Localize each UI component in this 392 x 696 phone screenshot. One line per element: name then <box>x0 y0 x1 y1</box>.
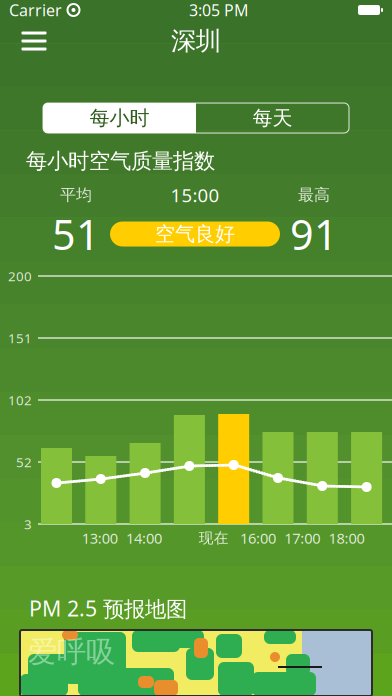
button[interactable]: 每小时 <box>43 103 196 133</box>
button[interactable]: Menu <box>11 21 57 61</box>
staticText: 3 <box>24 515 32 533</box>
staticText: 18:00 <box>329 528 365 548</box>
staticText: 爱呼吸 <box>28 634 115 670</box>
staticText: 17:00 <box>284 528 320 548</box>
staticText: PM 2.5 预报地图 <box>29 594 187 622</box>
staticText: 深圳 <box>171 25 221 56</box>
button[interactable]: 每天 <box>196 103 349 133</box>
staticText: 每天 <box>252 106 292 130</box>
staticText: 151 <box>8 329 32 347</box>
staticText: 3:05 PM <box>189 0 249 21</box>
staticText: 13:00 <box>82 528 118 548</box>
staticText: 每小时 <box>89 106 149 130</box>
staticText: 102 <box>8 391 32 409</box>
staticText: 15:00 <box>170 183 219 207</box>
staticText: 52 <box>16 453 32 471</box>
staticText: 平均 <box>60 185 92 205</box>
staticText: 14:00 <box>126 528 162 548</box>
staticText: 200 <box>8 267 32 285</box>
staticText: 现在 <box>199 529 229 547</box>
staticText: 16:00 <box>240 528 276 548</box>
staticText: 最高 <box>298 185 330 205</box>
staticText: Carrier <box>9 0 62 21</box>
staticText: 空气良好 <box>155 222 235 246</box>
staticText: 51 <box>52 207 100 261</box>
staticText: 每小时空气质量指数 <box>26 148 215 174</box>
staticText: 91 <box>290 207 338 261</box>
